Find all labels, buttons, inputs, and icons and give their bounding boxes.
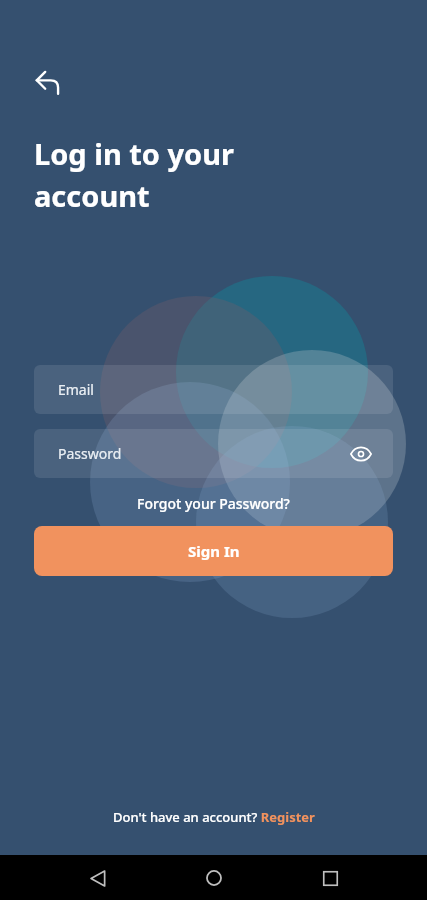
staticText: Password [58, 444, 122, 463]
button[interactable]: Show password [345, 438, 377, 470]
button[interactable]: Home [194, 858, 234, 898]
button[interactable]: Sign In [34, 526, 393, 576]
staticText: Sign In [188, 541, 240, 561]
button[interactable]: Back [26, 60, 70, 104]
button[interactable]: Email [34, 365, 393, 414]
button[interactable]: Recent apps [310, 858, 350, 898]
button[interactable]: Password [34, 429, 393, 478]
staticText: Log in to your account [34, 134, 235, 215]
staticText: Forgot your Password? [137, 494, 290, 513]
button[interactable]: Back [77, 858, 117, 898]
button[interactable]: Forgot your Password? [129, 490, 298, 517]
staticText: Email [58, 380, 94, 399]
staticText: Don't have an account? Register [113, 808, 315, 826]
button[interactable]: Don't have an account? Register [103, 802, 325, 832]
